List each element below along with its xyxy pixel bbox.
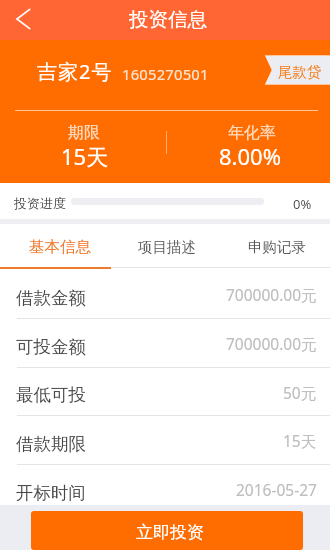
staticText: 700000.00元 — [226, 284, 317, 305]
button[interactable]: 开标时间 — [0, 465, 330, 514]
staticText: 吉家2号 — [37, 58, 113, 85]
button[interactable]: 申购记录 — [222, 224, 330, 266]
staticText: 50元 — [283, 382, 317, 403]
staticText: 2016-05-27 — [236, 479, 317, 500]
staticText: 开标时间 — [16, 482, 86, 504]
staticText: 尾款贷 — [278, 63, 322, 81]
staticText: 15天 — [61, 141, 109, 171]
button[interactable]: 立即投资 — [31, 511, 303, 550]
button[interactable]: 项目描述 — [112, 224, 222, 266]
staticText: 基本信息 — [29, 237, 91, 257]
button[interactable]: 基本信息 — [5, 224, 115, 266]
staticText: 年化率 — [228, 123, 276, 143]
staticText: 8.00% — [219, 141, 281, 171]
button[interactable]: 借款金额 — [0, 270, 330, 319]
staticText: 0% — [293, 195, 312, 213]
staticText: 投资信息 — [129, 7, 207, 32]
button[interactable]: Back — [0, 0, 46, 40]
staticText: 1605270501 — [122, 64, 209, 84]
button[interactable]: 可投金额 — [0, 319, 330, 368]
staticText: 借款期限 — [16, 433, 86, 455]
staticText: 借款金额 — [16, 287, 86, 309]
staticText: 立即投资 — [136, 522, 204, 543]
staticText: 最低可投 — [16, 384, 86, 406]
staticText: 15天 — [283, 430, 317, 451]
button[interactable]: 借款期限 — [0, 416, 330, 465]
staticText: 项目描述 — [138, 238, 196, 256]
staticText: 申购记录 — [248, 238, 306, 256]
staticText: 可投金额 — [16, 336, 86, 358]
button[interactable]: 最低可投 — [0, 368, 330, 416]
staticText: 投资进度 — [14, 195, 66, 211]
staticText: 期限 — [68, 123, 100, 143]
staticText: 700000.00元 — [226, 333, 317, 354]
